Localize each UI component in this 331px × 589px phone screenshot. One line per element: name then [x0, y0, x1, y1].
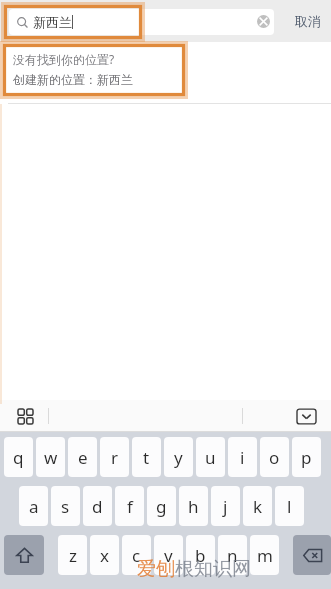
button[interactable]: Backspace — [293, 535, 331, 575]
button[interactable]: 新西兰 — [9, 9, 274, 35]
staticText: g — [156, 495, 167, 518]
button[interactable]: l — [275, 486, 304, 526]
button[interactable]: 没有找到你的位置? — [0, 42, 331, 87]
button[interactable]: c — [122, 535, 151, 575]
button[interactable]: e — [68, 437, 97, 477]
staticText: j — [223, 495, 228, 518]
button[interactable]: x — [90, 535, 119, 575]
staticText: s — [61, 495, 70, 518]
staticText: t — [143, 446, 150, 469]
button[interactable]: d — [83, 486, 112, 526]
button[interactable]: Shift — [4, 535, 44, 575]
button[interactable]: Clear text — [252, 10, 274, 32]
button[interactable]: y — [164, 437, 193, 477]
staticText: 爱刨 — [137, 557, 175, 581]
button[interactable]: g — [147, 486, 176, 526]
button[interactable]: q — [4, 437, 33, 477]
button[interactable]: a — [19, 486, 48, 526]
staticText: w — [44, 446, 58, 469]
staticText: z — [69, 544, 77, 567]
button[interactable]: 取消 — [285, 0, 331, 42]
staticText: 新西兰 — [33, 14, 72, 30]
staticText: 取消 — [295, 13, 321, 29]
button[interactable]: z — [58, 535, 87, 575]
button[interactable]: Keyboard options — [12, 403, 38, 429]
button[interactable]: j — [211, 486, 240, 526]
staticText: n — [227, 544, 238, 567]
button[interactable]: f — [115, 486, 144, 526]
button[interactable]: k — [243, 486, 272, 526]
button[interactable]: i — [228, 437, 257, 477]
button[interactable]: m — [250, 535, 279, 575]
staticText: r — [111, 446, 119, 469]
button[interactable]: w — [36, 437, 65, 477]
button[interactable]: h — [179, 486, 208, 526]
staticText: p — [301, 446, 312, 469]
staticText: 根知识网 — [175, 557, 251, 581]
staticText: d — [92, 495, 103, 518]
staticText: l — [287, 495, 292, 518]
staticText: u — [205, 446, 216, 469]
staticText: o — [269, 446, 280, 469]
staticText: h — [188, 495, 199, 518]
button[interactable]: v — [154, 535, 183, 575]
button[interactable]: n — [218, 535, 247, 575]
staticText: x — [100, 544, 109, 567]
button[interactable]: Hide keyboard — [293, 403, 319, 429]
staticText: c — [132, 544, 141, 567]
button[interactable]: r — [100, 437, 129, 477]
staticText: e — [78, 446, 88, 469]
button[interactable]: s — [51, 486, 80, 526]
staticText: k — [253, 495, 263, 518]
staticText: f — [127, 495, 133, 518]
staticText: v — [164, 544, 173, 567]
staticText: 没有找到你的位置? — [13, 51, 115, 67]
staticText: 创建新的位置：新西兰 — [13, 72, 133, 87]
staticText: y — [174, 446, 183, 469]
button[interactable]: o — [260, 437, 289, 477]
staticText: q — [13, 446, 24, 469]
staticText: i — [240, 446, 245, 469]
button[interactable]: b — [186, 535, 215, 575]
staticText: m — [257, 544, 273, 567]
button[interactable]: u — [196, 437, 225, 477]
button[interactable]: p — [292, 437, 321, 477]
staticText: a — [29, 495, 39, 518]
button[interactable]: t — [132, 437, 161, 477]
staticText: b — [195, 544, 206, 567]
